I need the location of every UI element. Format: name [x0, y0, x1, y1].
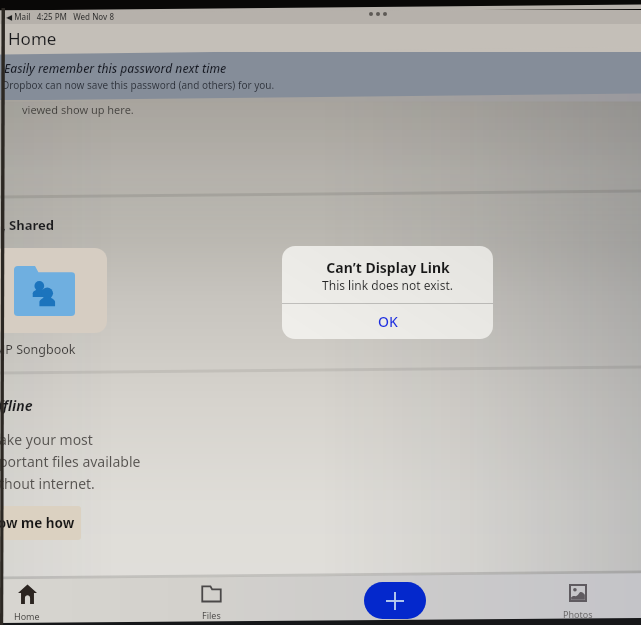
- button[interactable]: Photos: [555, 576, 601, 620]
- staticText: ake your most portant files available th…: [0, 430, 141, 493]
- staticText: Home: [8, 27, 57, 50]
- staticText: ffline: [0, 396, 33, 415]
- button[interactable]: [0, 248, 107, 333]
- button[interactable]: Home: [4, 576, 50, 620]
- staticText: Can’t Display Link: [326, 258, 450, 277]
- staticText: Home: [14, 610, 40, 622]
- staticText: , Shared: [2, 216, 55, 234]
- button[interactable]: Create: [364, 582, 426, 619]
- staticText: OK: [378, 312, 398, 331]
- staticText: MP Songbook: [0, 341, 76, 358]
- button[interactable]: Files: [188, 576, 234, 620]
- staticText: This link does not exist.: [322, 277, 453, 293]
- staticText: Files: [202, 609, 221, 621]
- staticText: how me how: [0, 514, 75, 532]
- staticText: Photos: [563, 608, 593, 620]
- staticText: viewed show up here.: [22, 102, 134, 117]
- staticText: ◀ Mail 4:25 PM Wed Nov 8: [6, 11, 114, 22]
- staticText: Easily remember this password next time: [4, 60, 227, 76]
- staticText: Dropbox can now save this password (and …: [2, 78, 275, 92]
- button[interactable]: how me how: [0, 506, 81, 540]
- button[interactable]: OK: [282, 304, 493, 339]
